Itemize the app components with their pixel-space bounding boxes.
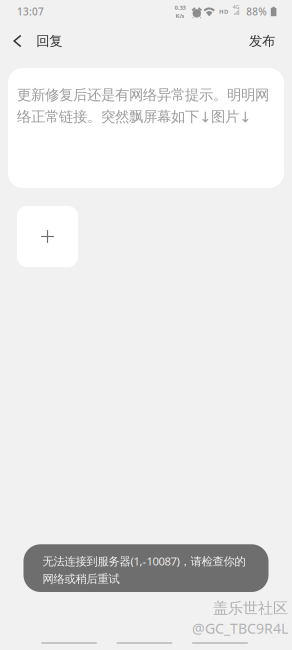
staticText: K/s <box>175 11 184 20</box>
staticText: 88% <box>246 5 267 18</box>
staticText: 13:07 <box>17 5 44 18</box>
staticText: 盖乐世社区 <box>213 599 288 618</box>
staticText: 4G <box>233 4 240 10</box>
button[interactable]: Add photo <box>17 206 78 267</box>
button[interactable]: Home <box>116 642 172 644</box>
button[interactable]: 回复 <box>0 26 76 56</box>
staticText: 更新修复后还是有网络异常提示。明明网络正常链接。突然飘屏幕如下↓图片↓ <box>17 86 269 126</box>
staticText: 0.33 <box>174 3 185 11</box>
staticText: 无法连接到服务器(1,-10087)，请检查你的网络或稍后重试 <box>42 553 245 586</box>
staticText: HD <box>219 7 228 16</box>
staticText: 发布 <box>249 33 275 49</box>
button[interactable]: 更新修复后还是有网络异常提示。明明网络正常链接。突然飘屏幕如下↓图片↓ <box>8 68 284 188</box>
staticText: 回复 <box>36 33 62 49</box>
staticText: @GC_TBC9R4L <box>192 619 288 638</box>
button[interactable]: 发布 <box>233 26 292 56</box>
